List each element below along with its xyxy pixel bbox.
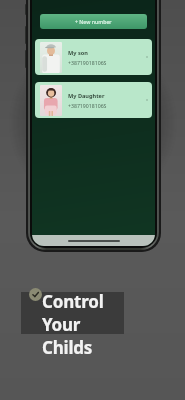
button[interactable]: My son [35,39,152,75]
staticText: Your [42,313,81,336]
staticText: My Daughter [68,92,105,100]
staticText: Control [42,290,104,313]
staticText: + New number [75,18,112,25]
staticText: +38719018106S [68,59,107,66]
other: Verified [29,288,42,301]
staticText: +38719018106S [68,102,107,109]
staticText: Childs [42,336,93,359]
button[interactable]: My Daughter [35,82,152,118]
button[interactable]: + New number [40,14,147,29]
staticText: My son [68,49,88,57]
